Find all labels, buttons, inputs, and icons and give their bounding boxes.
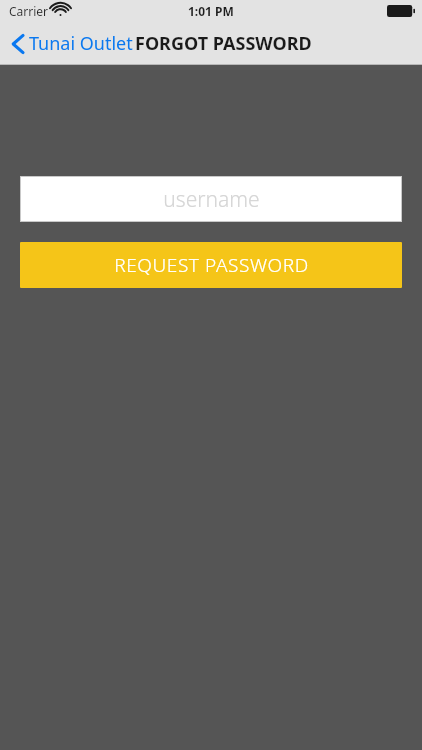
button[interactable]: username field [20, 176, 402, 222]
staticText: Carrier [9, 3, 49, 19]
staticText: FORGOT PASSWORD [135, 31, 312, 56]
staticText: REQUEST PASSWORD [114, 252, 309, 278]
button[interactable]: REQUEST PASSWORD [20, 242, 402, 288]
staticText: 1:01 PM [188, 3, 234, 19]
staticText: username [163, 185, 260, 214]
staticText: Tunai Outlet [29, 31, 133, 56]
button[interactable]: Back [12, 31, 137, 56]
other: Back [12, 34, 24, 54]
